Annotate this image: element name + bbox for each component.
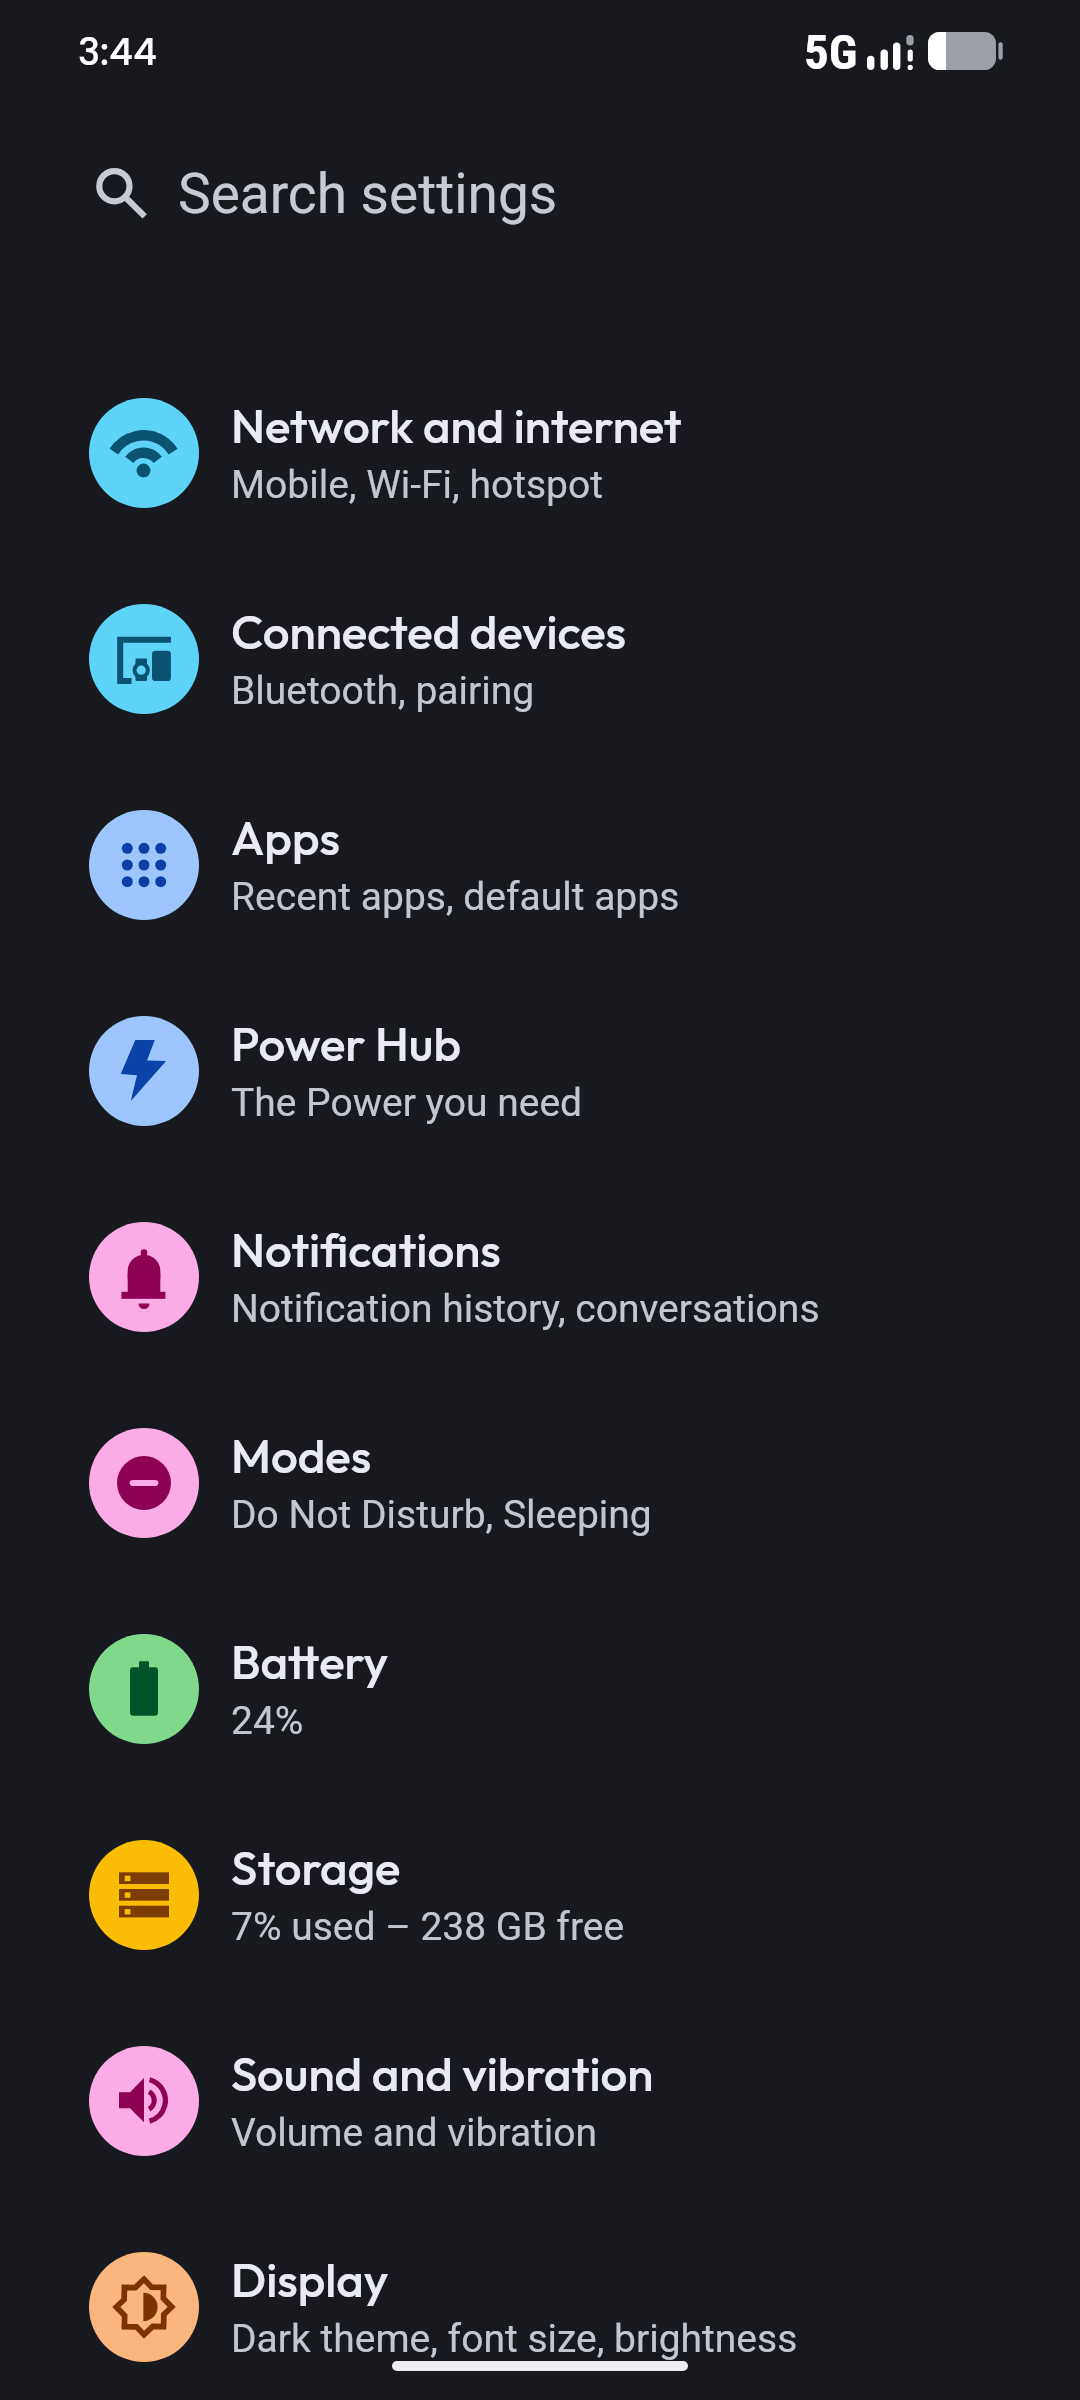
staticText: Connected devices	[231, 601, 627, 661]
staticText: Mobile, Wi-Fi, hotspot	[231, 462, 603, 508]
staticText: Storage	[231, 1837, 401, 1897]
staticText: Network and internet	[231, 395, 682, 455]
button[interactable]: Apps	[0, 762, 1080, 968]
staticText: Bluetooth, pairing	[231, 668, 535, 714]
button[interactable]: Search settings	[0, 148, 1080, 240]
staticText: 5G	[804, 24, 858, 81]
staticText: 3:44	[78, 26, 157, 78]
staticText: Volume and vibration	[231, 2110, 598, 2156]
staticText: 7% used – 238 GB free	[231, 1904, 625, 1950]
staticText: Notifications	[231, 1219, 501, 1279]
staticText: Battery	[231, 1631, 389, 1691]
staticText: Display	[231, 2249, 389, 2309]
button[interactable]: Notifications	[0, 1174, 1080, 1380]
button[interactable]: Sound and vibration	[0, 1998, 1080, 2204]
staticText: Do Not Disturb, Sleeping	[231, 1492, 652, 1538]
staticText: Dark theme, font size, brightness	[231, 2316, 798, 2362]
staticText: Power Hub	[231, 1013, 461, 1073]
staticText: Apps	[231, 807, 340, 867]
button[interactable]: Network and internet	[0, 350, 1080, 556]
button[interactable]: Storage	[0, 1792, 1080, 1998]
staticText: The Power you need	[231, 1080, 583, 1126]
staticText: Search settings	[178, 162, 558, 226]
staticText: Sound and vibration	[231, 2043, 654, 2103]
button[interactable]: Display	[0, 2204, 1080, 2400]
button[interactable]: Modes	[0, 1380, 1080, 1586]
staticText: Recent apps, default apps	[231, 874, 680, 920]
staticText: Modes	[231, 1425, 372, 1485]
button[interactable]: Power Hub	[0, 968, 1080, 1174]
button[interactable]: Connected devices	[0, 556, 1080, 762]
button[interactable]: Battery	[0, 1586, 1080, 1792]
staticText: Notification history, conversations	[231, 1286, 820, 1332]
staticText: 24%	[231, 1698, 304, 1744]
